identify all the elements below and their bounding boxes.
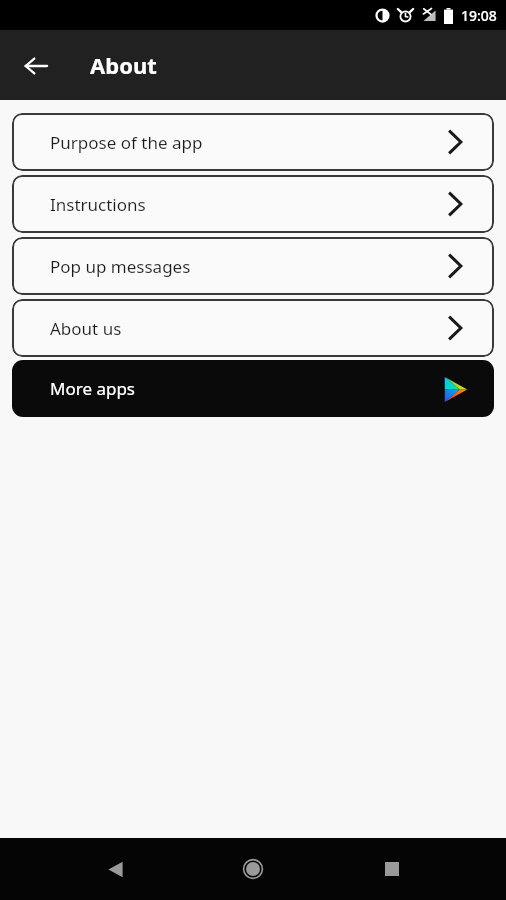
button[interactable]: Instructions xyxy=(12,175,494,233)
button[interactable]: More apps xyxy=(12,360,494,417)
button[interactable]: Back xyxy=(13,43,58,88)
button[interactable]: Pop up messages xyxy=(12,237,494,295)
staticText: Purpose of the app xyxy=(50,131,203,154)
staticText: Pop up messages xyxy=(50,255,191,278)
staticText: 19:08 xyxy=(461,6,497,25)
button[interactable]: About us xyxy=(12,299,494,357)
button[interactable]: Back xyxy=(91,845,139,893)
staticText: More apps xyxy=(50,377,135,400)
button[interactable]: Home xyxy=(229,845,277,893)
button[interactable]: Purpose of the app xyxy=(12,113,494,171)
button[interactable]: Recent apps xyxy=(368,845,416,893)
staticText: About us xyxy=(50,317,122,340)
staticText: About xyxy=(90,50,157,80)
staticText: Instructions xyxy=(50,193,146,216)
